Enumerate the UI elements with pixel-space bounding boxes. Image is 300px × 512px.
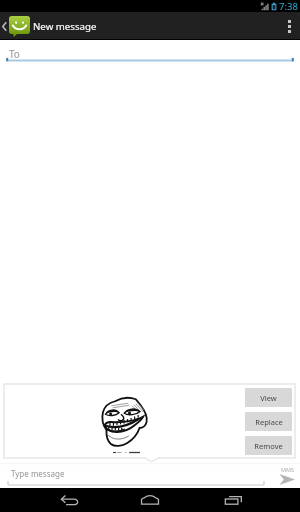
- button[interactable]: More options: [278, 12, 300, 40]
- button[interactable]: Remove: [245, 436, 292, 455]
- button[interactable]: To: [0, 40, 300, 64]
- button[interactable]: Recent apps: [217, 488, 249, 512]
- button[interactable]: Home: [134, 488, 166, 512]
- staticText: Replace: [255, 417, 283, 427]
- button[interactable]: Navigate up: [0, 12, 278, 40]
- button[interactable]: Replace: [245, 412, 292, 431]
- staticText: 7:38: [279, 0, 298, 12]
- staticText: MMS: [281, 466, 294, 473]
- staticText: Type message: [11, 468, 65, 479]
- button[interactable]: View: [245, 388, 292, 407]
- staticText: To: [9, 47, 20, 61]
- staticText: Remove: [254, 441, 283, 451]
- button[interactable]: Type message: [0, 462, 264, 488]
- staticText: View: [260, 393, 277, 403]
- button[interactable]: Back: [53, 488, 85, 512]
- staticText: New message: [33, 20, 97, 33]
- button[interactable]: Send: [279, 466, 295, 485]
- other: Navigate up: [2, 21, 7, 32]
